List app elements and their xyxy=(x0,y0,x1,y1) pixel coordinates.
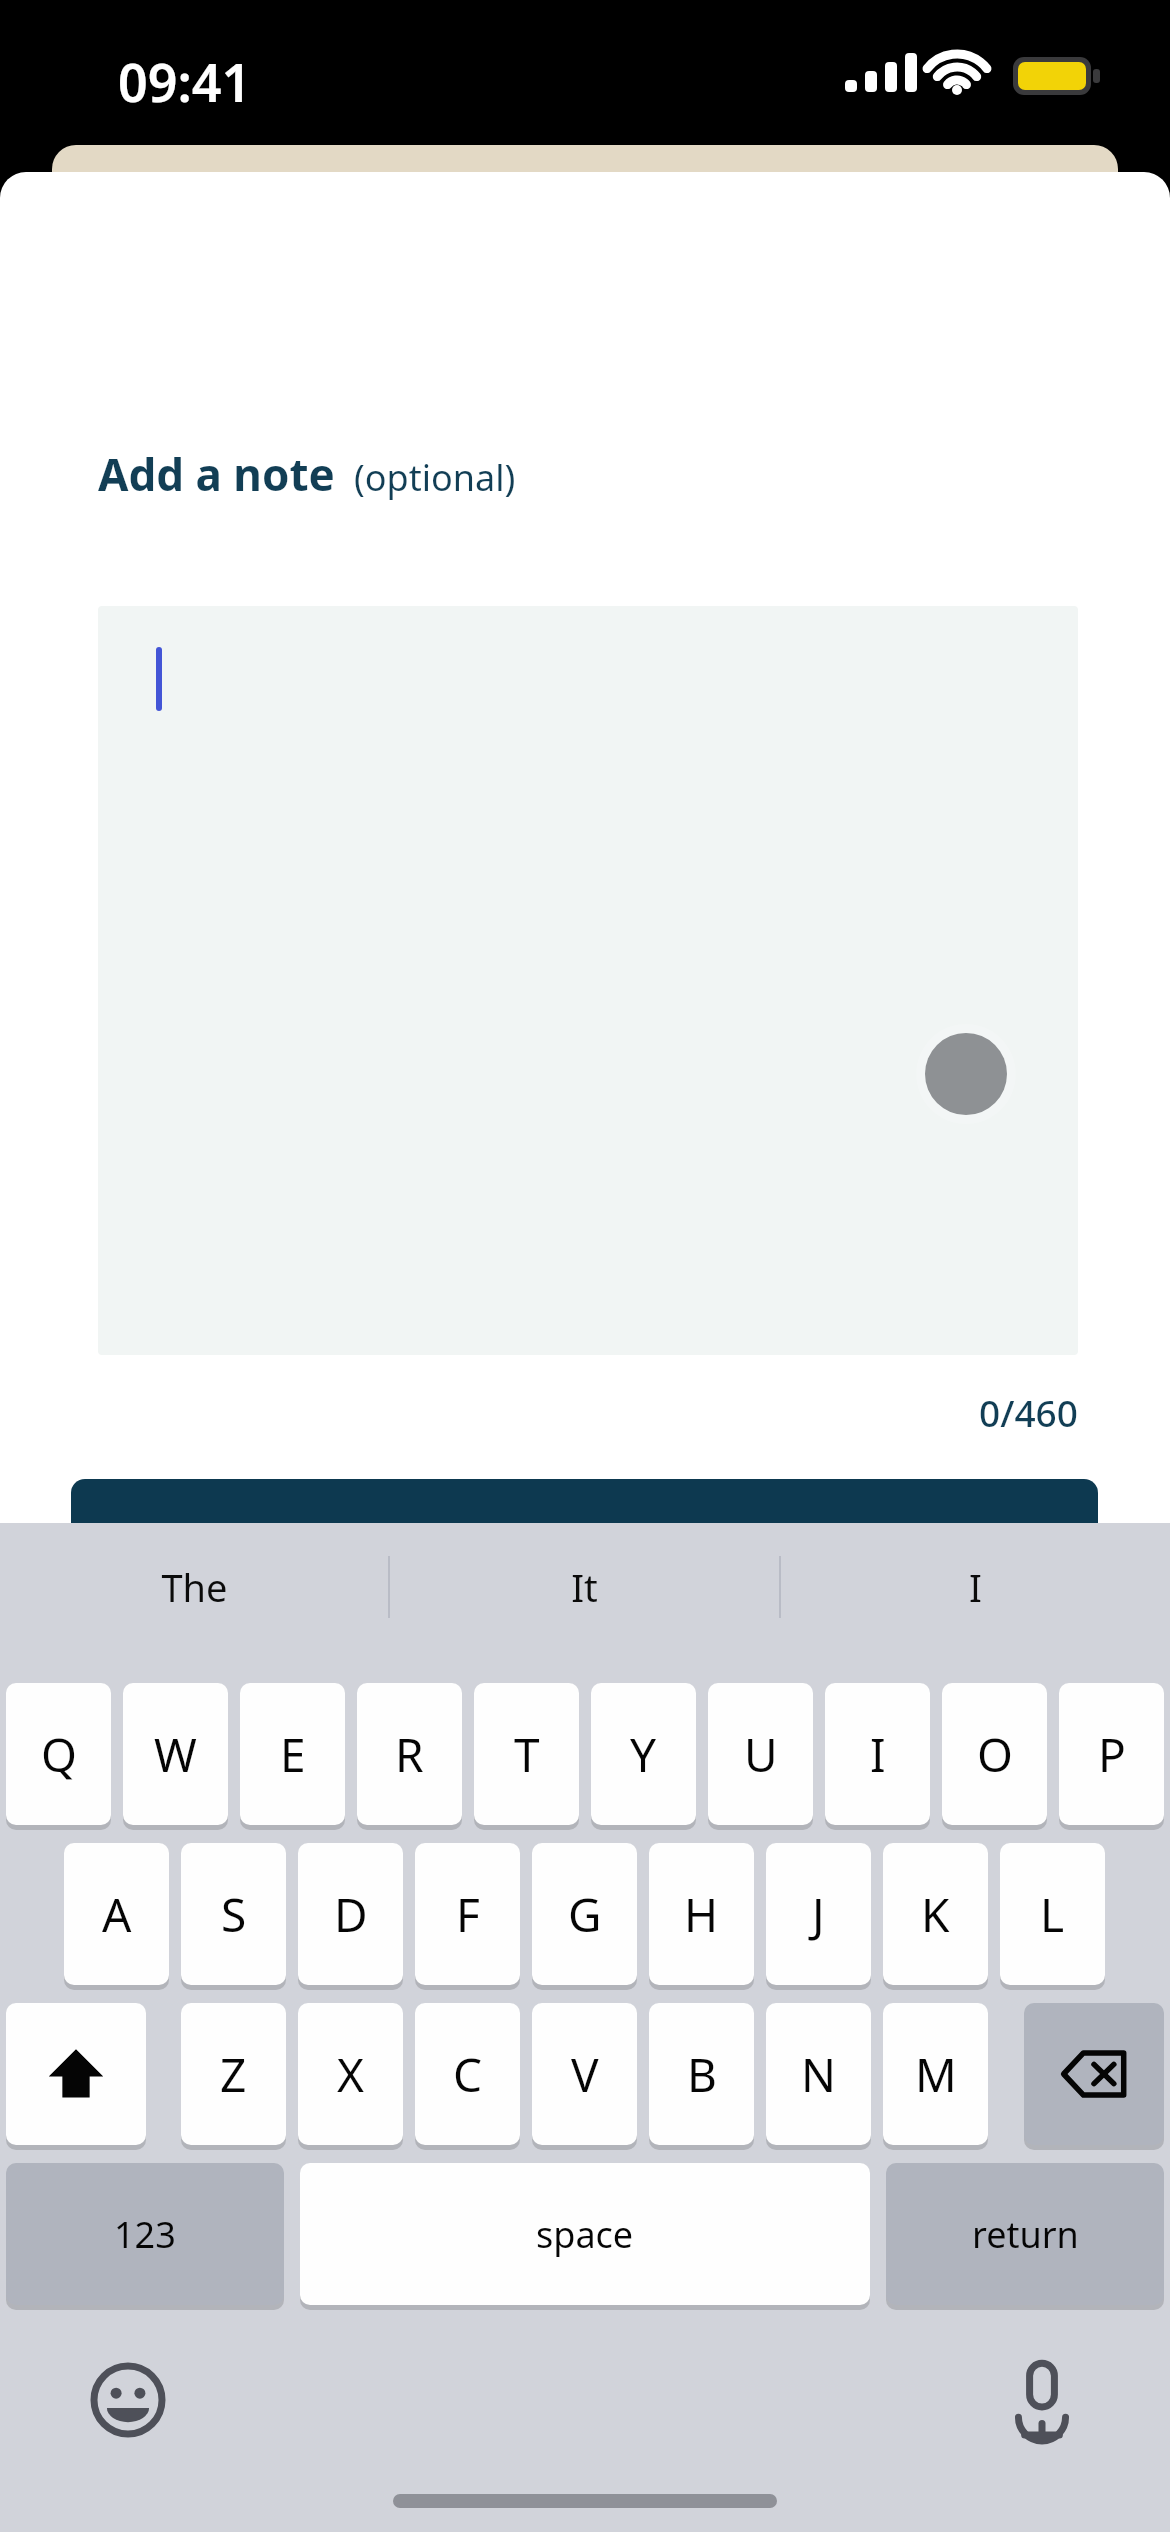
staticText: V xyxy=(571,2043,599,2106)
button[interactable]: F xyxy=(415,1843,520,1991)
staticText: E xyxy=(280,1723,306,1786)
button[interactable]: Dictation xyxy=(992,2350,1092,2450)
button[interactable]: It xyxy=(390,1523,779,1650)
staticText: T xyxy=(514,1723,540,1786)
staticText: 0/460 xyxy=(979,1387,1078,1437)
button[interactable]: R xyxy=(357,1683,462,1831)
staticText: A xyxy=(102,1883,132,1946)
button[interactable]: J xyxy=(766,1843,871,1991)
staticText: W xyxy=(154,1723,197,1786)
staticText: H xyxy=(684,1883,719,1946)
staticText: 09:41 xyxy=(118,46,252,117)
staticText: S xyxy=(221,1883,247,1946)
button[interactable]: G xyxy=(532,1843,637,1991)
staticText: I xyxy=(870,1723,886,1786)
staticText: G xyxy=(568,1883,602,1946)
button[interactable]: N xyxy=(766,2003,871,2151)
button[interactable]: Q xyxy=(6,1683,111,1831)
staticText: Q xyxy=(41,1723,77,1786)
button[interactable]: P xyxy=(1059,1683,1164,1831)
button[interactable]: B xyxy=(649,2003,754,2151)
staticText: (optional) xyxy=(354,453,516,502)
button[interactable]: 123 xyxy=(6,2163,284,2311)
button[interactable]: C xyxy=(415,2003,520,2151)
staticText: M xyxy=(915,2043,957,2106)
staticText: D xyxy=(334,1883,368,1946)
staticText: O xyxy=(977,1723,1013,1786)
button[interactable]: I xyxy=(825,1683,930,1831)
staticText: F xyxy=(456,1883,480,1946)
button[interactable]: I xyxy=(781,1523,1170,1650)
button[interactable]: S xyxy=(181,1843,286,1991)
button[interactable]: H xyxy=(649,1843,754,1991)
button[interactable]: Emoji keyboard xyxy=(78,2350,178,2450)
staticText: Add a note xyxy=(98,444,335,504)
button[interactable] xyxy=(98,606,1078,1355)
button[interactable]: O xyxy=(942,1683,1047,1831)
button[interactable]: Y xyxy=(591,1683,696,1831)
button[interactable]: Done xyxy=(71,1479,1098,1523)
staticText: U xyxy=(744,1723,778,1786)
button[interactable]: W xyxy=(123,1683,228,1831)
staticText: X xyxy=(337,2043,364,2106)
staticText: B xyxy=(687,2043,717,2106)
button[interactable]: E xyxy=(240,1683,345,1831)
button[interactable]: Backspace xyxy=(1024,2003,1164,2151)
button[interactable]: The xyxy=(0,1523,388,1650)
staticText: L xyxy=(1040,1883,1065,1946)
staticText: It xyxy=(571,1561,598,1613)
staticText: K xyxy=(921,1883,950,1946)
staticText: 123 xyxy=(114,2210,176,2259)
staticText: Y xyxy=(630,1723,657,1786)
button[interactable]: U xyxy=(708,1683,813,1831)
staticText: N xyxy=(801,2043,836,2106)
button[interactable]: return xyxy=(886,2163,1164,2311)
staticText: P xyxy=(1098,1723,1126,1786)
button[interactable]: Z xyxy=(181,2003,286,2151)
button[interactable]: X xyxy=(298,2003,403,2151)
button[interactable]: space xyxy=(300,2163,870,2311)
staticText: R xyxy=(395,1723,424,1786)
staticText: The xyxy=(161,1561,228,1613)
staticText: space xyxy=(536,2210,634,2259)
button[interactable]: K xyxy=(883,1843,988,1991)
staticText: C xyxy=(453,2043,483,2106)
button[interactable]: L xyxy=(1000,1843,1105,1991)
button[interactable]: Shift xyxy=(6,2003,146,2151)
button[interactable]: A xyxy=(64,1843,169,1991)
staticText: return xyxy=(972,2210,1079,2259)
button[interactable]: M xyxy=(883,2003,988,2151)
button[interactable]: V xyxy=(532,2003,637,2151)
button[interactable]: T xyxy=(474,1683,579,1831)
button[interactable]: D xyxy=(298,1843,403,1991)
staticText: Z xyxy=(220,2043,247,2106)
staticText: J xyxy=(812,1883,825,1946)
staticText: I xyxy=(969,1561,982,1613)
